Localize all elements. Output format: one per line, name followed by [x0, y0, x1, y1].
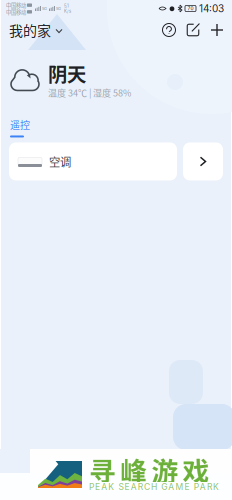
staticText: 我的家 — [9, 22, 51, 38]
staticText: K/s — [64, 8, 71, 14]
staticText: 温度 34℃ | 湿度 58% — [48, 87, 131, 98]
staticText: 阴天 — [48, 62, 86, 84]
button[interactable]: 空调 — [9, 142, 177, 180]
button[interactable]: Help — [157, 17, 181, 43]
staticText: 中国移动 — [6, 2, 26, 8]
staticText: PEAK SEARCH GAME PARK — [89, 482, 219, 492]
staticText: 70 — [187, 6, 193, 11]
staticText: 5G — [42, 6, 47, 11]
button[interactable]: Add device — [205, 17, 229, 43]
staticText: 5G — [56, 6, 61, 11]
button[interactable]: 我的家 — [1, 17, 68, 43]
staticText: 遥控 — [10, 119, 30, 130]
staticText: 寻峰游戏园 — [89, 454, 232, 485]
staticText: 5.1 — [64, 3, 69, 8]
staticText: 中国移动 — [6, 9, 26, 15]
button[interactable]: More remotes — [183, 142, 223, 180]
staticText: 14:03 — [199, 2, 224, 15]
staticText: 空调 — [49, 155, 71, 168]
button[interactable]: Share — [181, 17, 205, 43]
